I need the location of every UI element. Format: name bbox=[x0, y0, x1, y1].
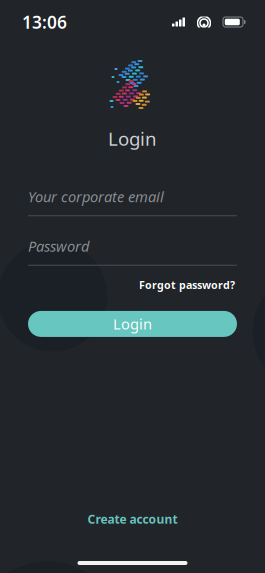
staticText: Password bbox=[28, 236, 89, 256]
button[interactable]: Login bbox=[28, 311, 237, 337]
staticText: 13:06 bbox=[22, 10, 67, 33]
staticText: Your corporate email bbox=[28, 187, 164, 206]
staticText: Login bbox=[113, 314, 152, 334]
staticText: Create account bbox=[87, 511, 177, 527]
staticText: Forgot password? bbox=[139, 278, 235, 292]
button[interactable]: Forgot password? bbox=[137, 275, 237, 295]
staticText: Login bbox=[108, 126, 157, 151]
button[interactable]: Create account bbox=[77, 505, 187, 533]
